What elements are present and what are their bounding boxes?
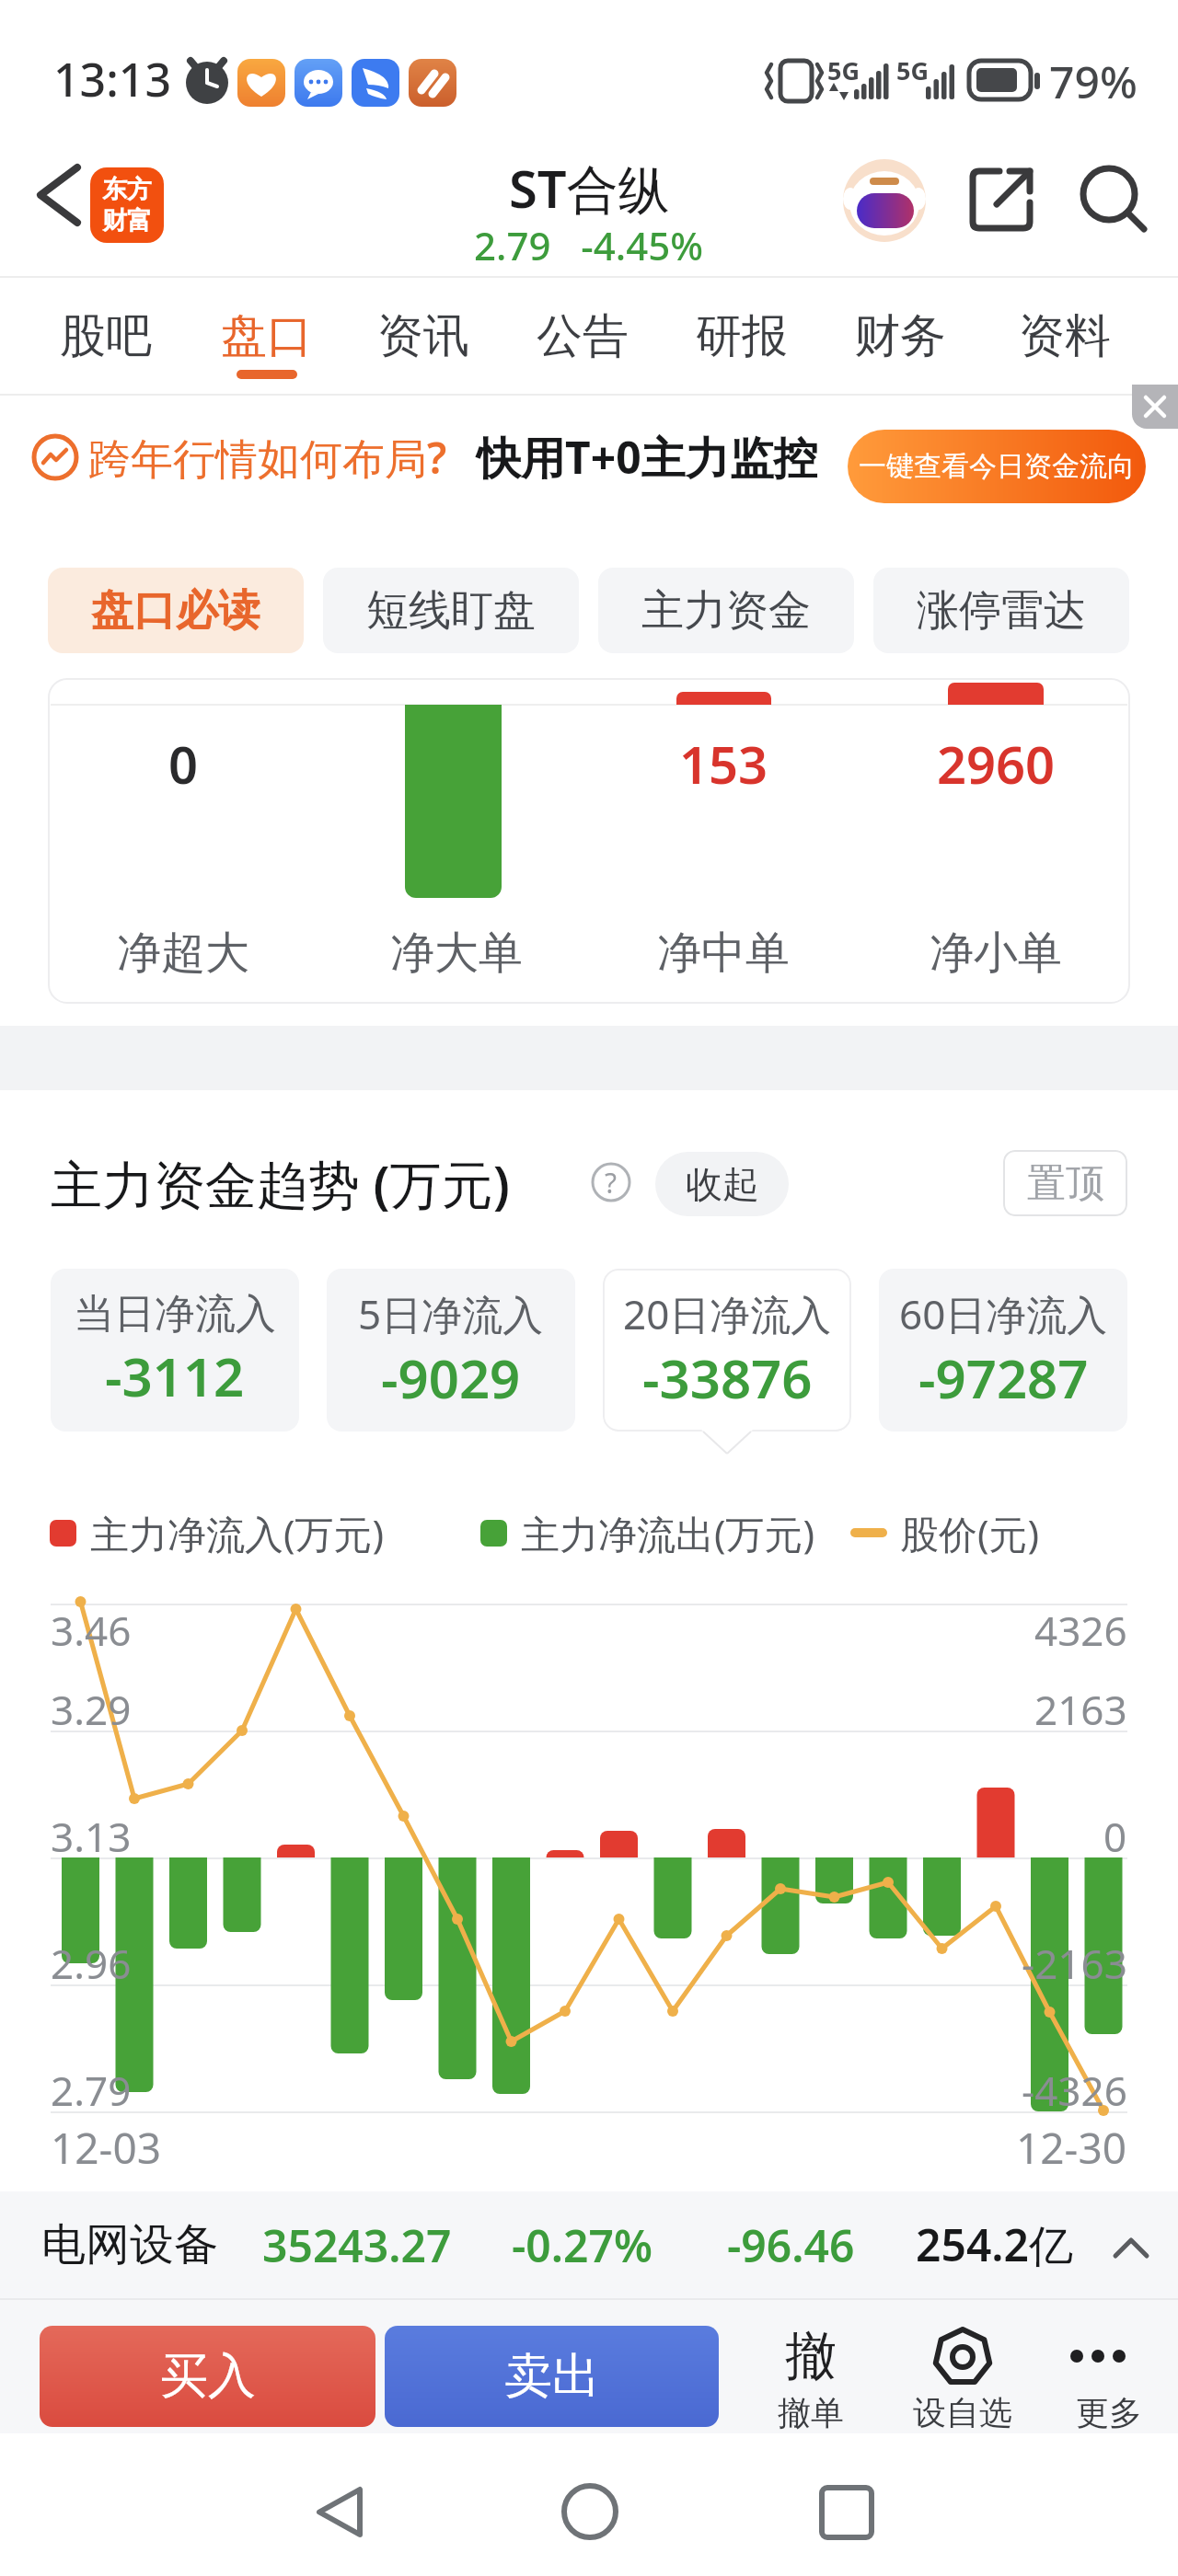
staticText: 2163 bbox=[1034, 1682, 1127, 1737]
staticText: 3.13 bbox=[51, 1809, 132, 1864]
button[interactable] bbox=[907, 2314, 1022, 2438]
staticText: 5G bbox=[896, 53, 929, 87]
staticText: 主力净流入(万元) bbox=[90, 1507, 385, 1559]
staticText: -0.27% bbox=[512, 2215, 653, 2275]
button[interactable]: 盘口必读 bbox=[48, 568, 304, 653]
staticText: 12-03 bbox=[51, 2119, 162, 2177]
staticText: 财务 bbox=[854, 307, 946, 365]
staticText: 5G bbox=[827, 53, 860, 87]
button[interactable]: 资料 bbox=[996, 294, 1134, 377]
staticText: 净超大 bbox=[117, 926, 249, 981]
staticText: 79% bbox=[1049, 52, 1138, 111]
button[interactable]: 资讯 bbox=[354, 294, 492, 377]
staticText: 快用T+0主力监控 bbox=[477, 427, 818, 488]
staticText: ST合纵 bbox=[509, 153, 670, 223]
staticText: 2.79 bbox=[51, 2063, 132, 2118]
staticText: 2960 bbox=[937, 729, 1056, 799]
staticText: 主力资金 bbox=[641, 584, 811, 638]
staticText: 股价(元) bbox=[900, 1507, 1040, 1559]
button[interactable]: 买入 bbox=[40, 2326, 375, 2427]
button[interactable] bbox=[28, 156, 92, 239]
staticText: 主力资金趋势 (万元) bbox=[51, 1148, 510, 1218]
staticText: 设自选 bbox=[913, 2392, 1012, 2433]
staticText: 4326 bbox=[1034, 1603, 1127, 1658]
staticText: 置顶 bbox=[1027, 1159, 1104, 1208]
button[interactable]: 当日净流入 bbox=[51, 1269, 299, 1432]
staticText: 电网设备 bbox=[41, 2217, 218, 2272]
staticText: 12-30 bbox=[1016, 2119, 1127, 2177]
staticText: 3.46 bbox=[51, 1603, 132, 1658]
staticText: -97287 bbox=[918, 1341, 1089, 1414]
button[interactable]: 研报 bbox=[673, 294, 811, 377]
staticText: 一键查看今日资金流向 bbox=[859, 449, 1135, 484]
staticText: -33876 bbox=[642, 1341, 813, 1414]
button[interactable]: 5日净流入 bbox=[327, 1269, 575, 1432]
staticText: 20日净流入 bbox=[623, 1286, 832, 1341]
button[interactable]: 短线盯盘 bbox=[323, 568, 579, 653]
button[interactable]: 主力资金 bbox=[598, 568, 854, 653]
staticText: 0 bbox=[168, 729, 199, 799]
button[interactable] bbox=[1077, 165, 1150, 236]
staticText: 资料 bbox=[1019, 307, 1111, 365]
staticText: ? bbox=[605, 1164, 618, 1202]
button[interactable] bbox=[1132, 385, 1178, 429]
button[interactable]: 收起 bbox=[655, 1152, 789, 1216]
staticText: 35243.27 bbox=[262, 2215, 452, 2275]
button[interactable] bbox=[258, 2447, 414, 2576]
staticText: 0 bbox=[1103, 1809, 1127, 1864]
staticText: 当日净流入 bbox=[74, 1289, 276, 1340]
button[interactable]: 60日净流入 bbox=[879, 1269, 1127, 1432]
staticText: 卖出 bbox=[504, 2346, 600, 2407]
staticText: 净大单 bbox=[390, 926, 523, 981]
staticText: 254.2亿 bbox=[916, 2214, 1074, 2275]
staticText: 153 bbox=[679, 729, 768, 799]
button[interactable]: 一键查看今日资金流向 bbox=[848, 430, 1146, 503]
button[interactable] bbox=[0, 2191, 1178, 2298]
staticText: 公告 bbox=[537, 307, 629, 365]
staticText: 撤 bbox=[785, 2324, 837, 2389]
button[interactable]: 20日净流入 bbox=[603, 1269, 851, 1432]
button[interactable]: 公告 bbox=[514, 294, 652, 377]
staticText: 主力净流出(万元) bbox=[521, 1507, 815, 1559]
button[interactable] bbox=[843, 159, 926, 242]
staticText: 撤单 bbox=[778, 2392, 844, 2433]
staticText: 更多 bbox=[1076, 2392, 1142, 2433]
staticText: 净中单 bbox=[657, 926, 790, 981]
staticText: -2163 bbox=[1022, 1936, 1127, 1991]
staticText: 资讯 bbox=[377, 307, 469, 365]
staticText: 收起 bbox=[686, 1161, 759, 1207]
staticText: 13:13 bbox=[53, 48, 171, 110]
staticText: 跨年行情如何布局? bbox=[88, 429, 447, 487]
staticText: 财富 bbox=[102, 205, 152, 236]
staticText: 净小单 bbox=[930, 926, 1062, 981]
staticText: -9029 bbox=[381, 1341, 521, 1414]
staticText: 东方 bbox=[102, 174, 152, 205]
staticText: -3112 bbox=[105, 1340, 245, 1412]
button[interactable] bbox=[755, 2314, 870, 2438]
staticText: -96.46 bbox=[727, 2215, 855, 2275]
button[interactable]: 涨停雷达 bbox=[873, 568, 1129, 653]
staticText: 5日净流入 bbox=[358, 1286, 544, 1341]
button[interactable]: 财务 bbox=[831, 294, 969, 377]
staticText: 盘口 bbox=[221, 307, 313, 365]
staticText: 短线盯盘 bbox=[366, 584, 536, 638]
button[interactable]: 置顶 bbox=[1003, 1150, 1127, 1216]
button[interactable]: 股吧 bbox=[37, 294, 175, 377]
staticText: 2.96 bbox=[51, 1936, 132, 1991]
button[interactable] bbox=[764, 2447, 920, 2576]
staticText: 60日净流入 bbox=[899, 1286, 1108, 1341]
staticText: -4326 bbox=[1022, 2063, 1127, 2118]
staticText: 2.79 -4.45% bbox=[474, 219, 704, 271]
button[interactable] bbox=[1054, 2314, 1169, 2438]
button[interactable] bbox=[966, 165, 1038, 236]
staticText: 买入 bbox=[160, 2346, 256, 2407]
button[interactable] bbox=[511, 2447, 667, 2576]
staticText: 盘口必读 bbox=[91, 584, 260, 638]
staticText: 股吧 bbox=[60, 307, 152, 365]
staticText: 涨停雷达 bbox=[917, 584, 1086, 638]
staticText: 研报 bbox=[696, 307, 788, 365]
button[interactable]: 盘口 bbox=[198, 294, 336, 377]
button[interactable]: 东方 bbox=[90, 167, 164, 243]
button[interactable]: 卖出 bbox=[385, 2326, 719, 2427]
staticText: 3.29 bbox=[51, 1682, 132, 1737]
